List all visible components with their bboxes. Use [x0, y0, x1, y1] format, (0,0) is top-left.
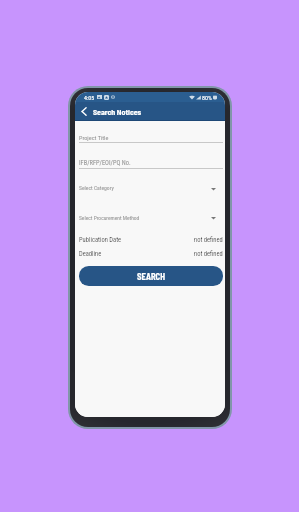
staticText: Deadline	[79, 250, 102, 258]
button[interactable]: Deadline	[79, 249, 223, 258]
staticText: Project Title	[79, 134, 109, 141]
staticText: IFB/RFP/EOI/PQ No.	[79, 159, 131, 167]
staticText: not defined	[194, 250, 223, 258]
button[interactable]: SEARCH	[79, 266, 223, 286]
staticText: 80%	[202, 94, 212, 101]
staticText: Publication Date	[79, 236, 122, 244]
staticText: Search Notices	[93, 107, 142, 116]
staticText: not defined	[194, 236, 223, 244]
button[interactable]: Select Category	[79, 184, 223, 193]
staticText: 4:05	[84, 94, 95, 101]
button[interactable]: Publication Date	[79, 235, 223, 244]
button[interactable]: Back	[76, 102, 92, 121]
staticText: Select Procurement Method	[79, 215, 140, 221]
staticText: Select Category	[79, 185, 114, 192]
button[interactable]: Select Procurement Method	[79, 213, 223, 222]
staticText: SEARCH	[137, 271, 165, 281]
